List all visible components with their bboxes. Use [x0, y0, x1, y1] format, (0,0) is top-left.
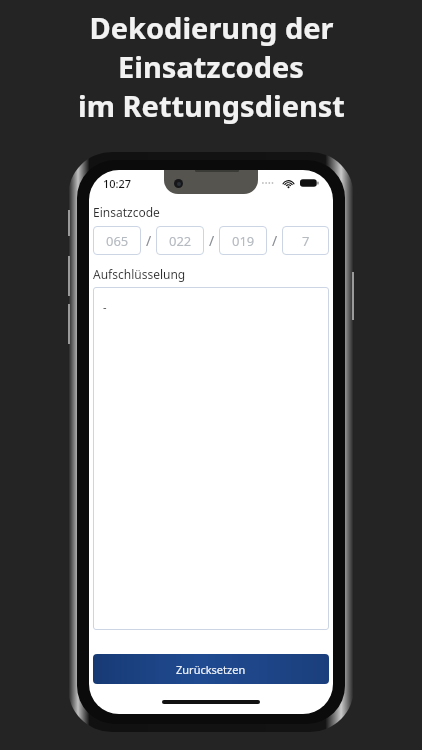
staticText: im Rettungsdienst: [78, 86, 345, 125]
staticText: /: [209, 231, 215, 250]
staticText: 019: [232, 232, 255, 250]
staticText: Einsatzcodes: [118, 47, 304, 86]
button[interactable]: 7: [282, 226, 329, 255]
button[interactable]: -: [93, 287, 329, 630]
button[interactable]: 065: [93, 226, 141, 255]
other: Battery: [300, 178, 319, 188]
staticText: Dekodierung der: [89, 8, 334, 47]
staticText: /: [146, 231, 152, 250]
staticText: Zurücksetzen: [176, 662, 246, 677]
staticText: Einsatzcode: [93, 204, 160, 220]
staticText: 10:27: [103, 176, 132, 191]
staticText: 022: [169, 232, 192, 250]
staticText: /: [272, 231, 278, 250]
staticText: 7: [302, 232, 310, 250]
other: Wi-Fi: [282, 178, 295, 188]
button[interactable]: Zurücksetzen: [93, 654, 329, 684]
staticText: 065: [106, 232, 129, 250]
staticText: -: [103, 299, 107, 314]
button[interactable]: 019: [219, 226, 267, 255]
staticText: Aufschlüsselung: [93, 266, 186, 282]
button[interactable]: 022: [156, 226, 204, 255]
